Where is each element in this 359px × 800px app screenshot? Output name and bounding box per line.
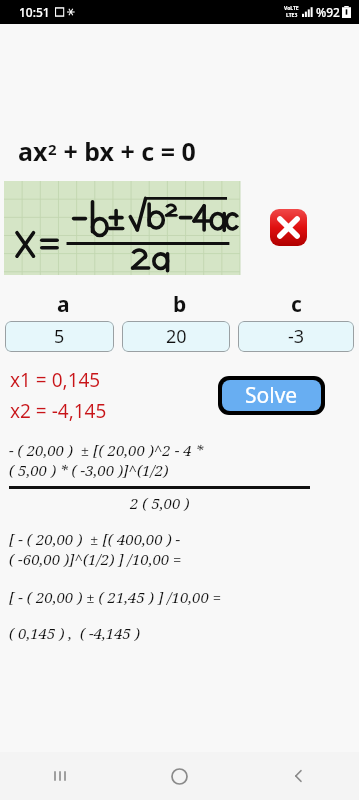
staticText: ax	[18, 134, 48, 168]
staticText: Solve	[245, 381, 298, 410]
staticText: - ( 20,00 ) ± [( 20,00 )^2 - 4 *	[9, 440, 203, 460]
button[interactable]: 5	[5, 321, 114, 352]
staticText: b	[173, 290, 187, 319]
staticText: VoLTE	[284, 5, 299, 12]
button[interactable]: Clear	[267, 206, 310, 249]
staticText: 5	[54, 324, 65, 349]
staticText: [ - ( 20,00 ) ± ( 21,45 ) ] /10,00 =	[9, 587, 222, 607]
button[interactable]: Back	[239, 752, 359, 800]
staticText: c	[291, 290, 302, 319]
staticText: 2	[48, 139, 57, 159]
staticText: a	[57, 290, 70, 319]
staticText: x2 = -4,145	[10, 398, 107, 424]
staticText: ( 0,145 ) , ( -4,145 )	[9, 623, 141, 643]
button[interactable]: -3	[238, 321, 354, 352]
staticText: 2 ( 5,00 )	[130, 493, 190, 513]
staticText: [ - ( 20,00 ) ± [( 400,00 ) -	[9, 529, 181, 549]
staticText: + bx + c = 0	[57, 134, 196, 168]
button[interactable]: Solve	[222, 380, 321, 411]
staticText: 10:51	[19, 4, 50, 20]
staticText: -3	[288, 324, 305, 349]
staticText: LTE3	[286, 12, 298, 19]
staticText: 20	[166, 324, 187, 349]
staticText: x1 = 0,145	[10, 367, 101, 393]
staticText: ( 5,00 ) * ( -3,00 )]^(1/2)	[9, 460, 169, 480]
button[interactable]: Home	[119, 752, 239, 800]
staticText: ( -60,00 )]^(1/2) ] /10,00 =	[9, 549, 182, 569]
button[interactable]: Recents	[0, 752, 119, 800]
button[interactable]: 20	[122, 321, 230, 352]
staticText: %92	[316, 4, 340, 20]
